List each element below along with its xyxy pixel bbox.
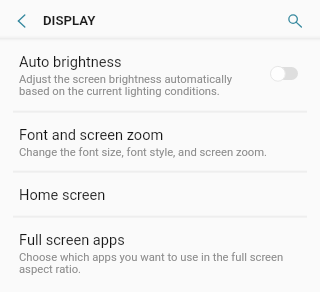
staticText: DISPLAY (43, 13, 96, 28)
button[interactable]: Home screen (0, 171, 320, 216)
staticText: Auto brightness (19, 53, 244, 70)
staticText: Font and screen zoom (19, 126, 294, 143)
button[interactable]: Font and screen zoom (0, 111, 320, 171)
button[interactable]: Auto brightness, off (270, 66, 299, 82)
button[interactable]: Auto brightness (0, 38, 320, 111)
staticText: Home screen (19, 186, 294, 203)
staticText: Adjust the screen brightness automatical… (19, 73, 244, 98)
button[interactable]: Full screen apps (0, 216, 320, 292)
staticText: Choose which apps you want to use in the… (19, 251, 294, 276)
button[interactable]: Search (275, 0, 313, 38)
button[interactable]: Navigate up (1, 1, 39, 39)
staticText: Full screen apps (19, 231, 294, 248)
staticText: Change the font size, font style, and sc… (19, 146, 294, 159)
